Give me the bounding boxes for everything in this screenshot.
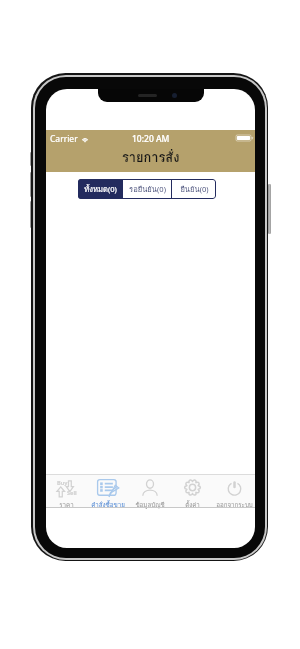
button[interactable]: รอยืนยัน(0) <box>123 179 171 199</box>
staticText: ตั้งค่า <box>185 500 200 510</box>
staticText: Buy <box>57 479 68 487</box>
button[interactable]: คำสั่งซื้อขาย <box>87 475 129 507</box>
staticText: คำสั่งซื้อขาย <box>91 500 125 510</box>
button[interactable]: ยืนยัน(0) <box>172 179 216 199</box>
staticText: ทั้งหมด(0) <box>84 183 117 195</box>
staticText: รายการสั่ง <box>122 147 180 167</box>
staticText: 10:20 AM <box>132 133 170 145</box>
staticText: ยืนยัน(0) <box>180 183 209 195</box>
staticText: ข้อมูลบัญชี <box>135 500 165 510</box>
staticText: ออกจากระบบ <box>216 500 253 510</box>
button[interactable]: Buy <box>46 475 87 507</box>
staticText: Carrier <box>50 133 78 145</box>
staticText: ราคา <box>59 500 74 510</box>
button[interactable]: ตั้งค่า <box>171 475 213 507</box>
staticText: Sell <box>67 489 77 497</box>
button[interactable]: ข้อมูลบัญชี <box>129 475 171 507</box>
button[interactable]: ออกจากระบบ <box>213 475 255 507</box>
staticText: รอยืนยัน(0) <box>129 183 166 195</box>
button[interactable]: ทั้งหมด(0) <box>78 179 122 199</box>
